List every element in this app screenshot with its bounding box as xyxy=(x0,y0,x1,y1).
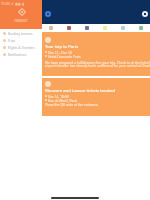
button[interactable]: Your trip to Paris xyxy=(42,32,150,76)
button[interactable]: Tab 5 xyxy=(114,24,132,32)
staticText: 11:03 ▾ ●● ▮ xyxy=(1,1,25,6)
staticText: Rue de Rivoli, Paris xyxy=(48,98,78,102)
button[interactable]: Flights & Transfers xyxy=(0,44,42,51)
button[interactable]: Options xyxy=(142,11,148,17)
button[interactable]: Tab 3 xyxy=(78,24,96,32)
button[interactable]: Tab 4 xyxy=(96,24,114,32)
button[interactable]: Museum and Louvre tickets booked xyxy=(42,78,150,116)
staticText: Museum and Louvre tickets booked xyxy=(45,88,116,94)
staticText: Trips xyxy=(8,39,16,43)
button[interactable]: Booking services xyxy=(0,30,42,37)
button[interactable]: Tab 1 xyxy=(42,24,60,32)
staticText: We have prepared a full itinerary for yo… xyxy=(45,60,150,68)
staticText: Dec 14, 10:00 xyxy=(48,94,69,98)
button[interactable]: Profile xyxy=(45,11,51,17)
staticText: Notifications xyxy=(8,53,27,57)
staticText: Flights & Transfers xyxy=(8,46,35,50)
staticText: Dec 12 - Dec 18 xyxy=(48,50,72,54)
button[interactable]: Notifications xyxy=(0,51,42,58)
staticText: Show the QR code at the entrance. xyxy=(45,102,99,106)
staticText: Your trip to Paris xyxy=(45,44,78,50)
button[interactable]: Tab 2 xyxy=(60,24,78,32)
staticText: Hotel Concorde Paris xyxy=(48,54,81,58)
staticText: TRAVELY xyxy=(14,18,28,23)
staticText: Booking services xyxy=(8,32,33,36)
button[interactable]: Tab 6 xyxy=(132,24,150,32)
button[interactable]: Trips xyxy=(0,37,42,44)
